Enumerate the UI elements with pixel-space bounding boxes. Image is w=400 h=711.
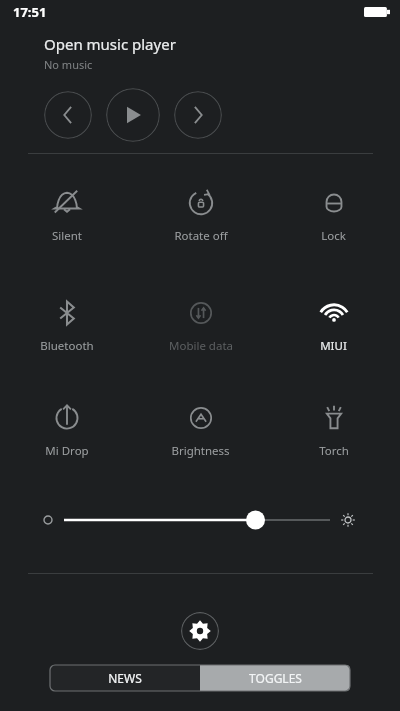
staticText: Lock [321,228,346,244]
staticText: Brightness [171,443,230,459]
staticText: Bluetooth [40,338,94,354]
staticText: TOGGLES [249,670,302,686]
button[interactable]: Settings [181,612,219,650]
staticText: Mi Drop [45,443,89,459]
button[interactable]: Mi Drop [0,401,134,459]
button[interactable]: MIUI [267,296,400,354]
staticText: Rotate off [174,228,228,244]
staticText: Silent [52,228,82,244]
button[interactable]: Lock [267,186,400,244]
button[interactable]: Brightness [134,401,267,459]
staticText: NEWS [108,670,142,686]
staticText: MIUI [320,338,347,354]
staticText: 17:51 [13,3,47,21]
staticText: Torch [319,443,349,459]
button[interactable]: Mobile data [134,296,267,354]
button[interactable]: TOGGLES [200,665,350,691]
button[interactable]: Bluetooth [0,296,134,354]
button[interactable]: Silent [0,186,134,244]
button[interactable]: Play [106,88,160,142]
button[interactable]: Open music player [44,34,176,54]
button[interactable]: Brightness slider [0,500,400,540]
button[interactable]: Next [174,91,222,139]
button[interactable]: NEWS [50,665,200,691]
button[interactable]: Rotate off [134,186,267,244]
button[interactable]: Previous [44,91,92,139]
button[interactable]: Torch [267,401,400,459]
staticText: Mobile data [169,338,233,354]
staticText: No music [44,57,93,72]
